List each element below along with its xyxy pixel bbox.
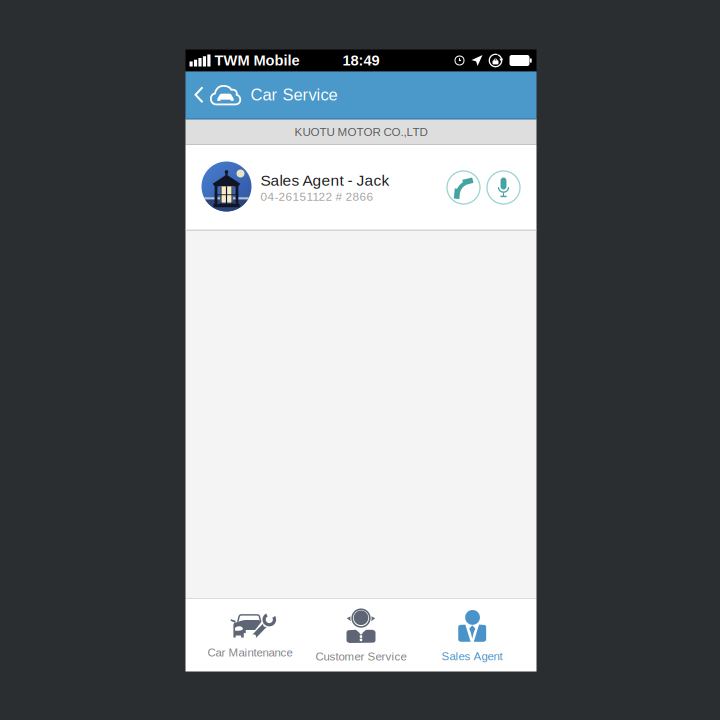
button[interactable]: Sales Agent bbox=[416, 599, 527, 671]
staticText: Customer Service bbox=[315, 650, 406, 663]
button[interactable]: Voice message bbox=[483, 167, 523, 207]
button[interactable]: Customer Service bbox=[305, 599, 416, 671]
staticText: KUOTU MOTOR CO.,LTD bbox=[294, 125, 427, 138]
staticText: TWM Mobile bbox=[214, 52, 299, 69]
button[interactable]: Call bbox=[443, 167, 483, 207]
staticText: 18:49 bbox=[342, 52, 379, 69]
staticText: Sales Agent - Jack bbox=[260, 172, 389, 189]
button[interactable]: Car Maintenance bbox=[194, 599, 305, 671]
staticText: 04-26151122 # 2866 bbox=[260, 190, 373, 203]
staticText: Car Service bbox=[250, 85, 337, 104]
button[interactable]: Back bbox=[185, 71, 241, 118]
staticText: Sales Agent bbox=[441, 650, 502, 663]
staticText: Car Maintenance bbox=[207, 646, 292, 659]
